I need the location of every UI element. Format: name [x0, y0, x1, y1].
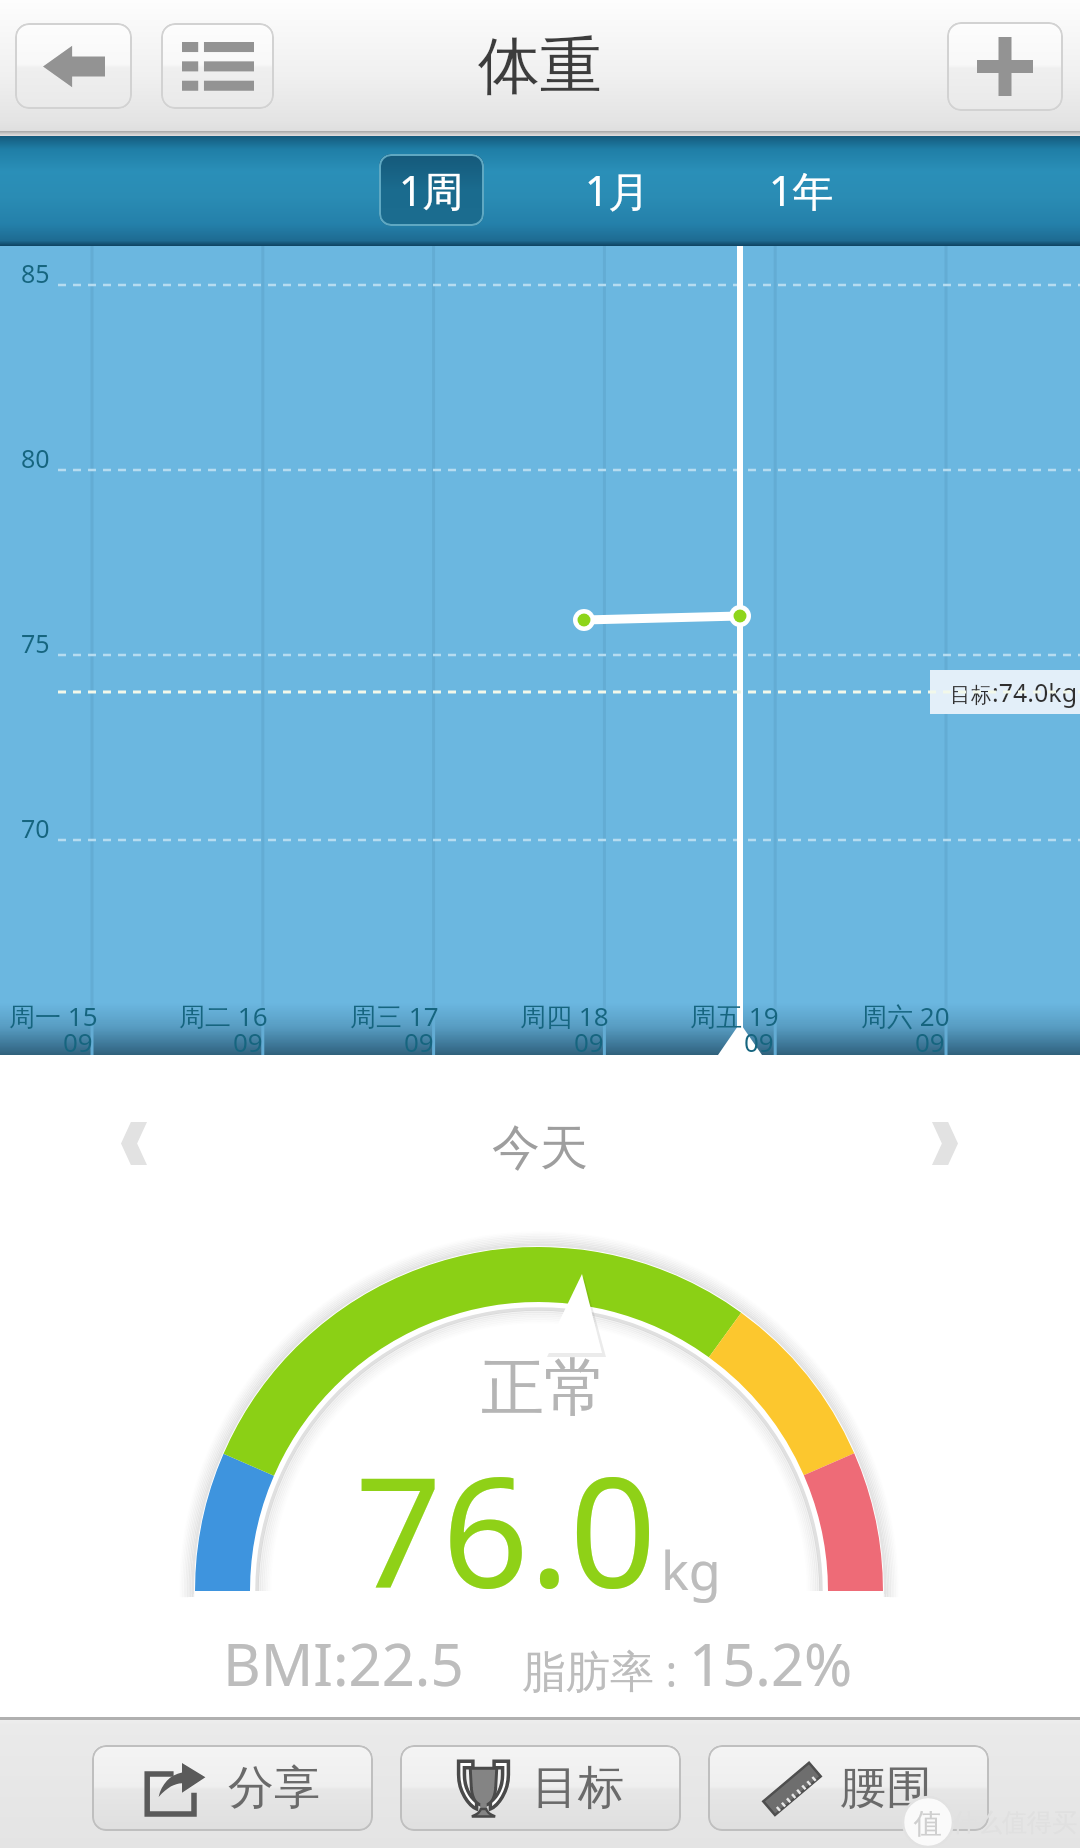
button[interactable]: 分享	[92, 1745, 373, 1831]
staticText: 分享	[228, 1759, 320, 1817]
staticText: 75	[21, 626, 50, 660]
staticText: :74.0kg	[992, 675, 1078, 709]
button[interactable]: 腰围	[708, 1745, 989, 1831]
staticText: 76.0	[355, 1425, 657, 1632]
staticText: :	[654, 1640, 689, 1700]
button[interactable]: 1周	[379, 154, 484, 226]
staticText: 1年	[769, 162, 834, 218]
staticText: 目标	[532, 1759, 624, 1817]
staticText: 值	[914, 1806, 942, 1841]
staticText: 1月	[585, 162, 650, 218]
staticText: 09	[744, 1024, 774, 1059]
staticText: 周六 20	[861, 998, 950, 1034]
staticText: 09	[233, 1024, 263, 1059]
staticText: 正常	[481, 1348, 607, 1427]
staticText: 70	[21, 811, 50, 845]
staticText: 周三 17	[350, 998, 439, 1034]
button[interactable]: List	[161, 23, 274, 109]
staticText: 09	[404, 1024, 434, 1059]
staticText: 目标	[950, 682, 992, 708]
button[interactable]: Next day	[915, 1102, 975, 1185]
staticText: 15.2%	[689, 1624, 853, 1703]
staticText: 体重	[478, 27, 602, 105]
staticText: 周二 16	[179, 998, 268, 1034]
button[interactable]: 1月	[565, 154, 670, 226]
staticText: 周一 15	[9, 998, 98, 1034]
staticText: BMI:22.5	[223, 1624, 464, 1703]
button[interactable]: Previous day	[104, 1102, 164, 1185]
staticText: 80	[21, 441, 50, 475]
staticText: 周四 18	[520, 998, 609, 1034]
staticText: 85	[21, 256, 50, 290]
staticText: 周五 19	[690, 998, 779, 1034]
staticText: 09	[63, 1024, 93, 1059]
staticText: 1周	[399, 162, 464, 218]
button[interactable]: 1年	[749, 154, 854, 226]
button[interactable]: 目标	[400, 1745, 681, 1831]
staticText: 09	[915, 1024, 945, 1059]
staticText: 什么值得买	[952, 1807, 1077, 1838]
staticText: 腰围	[840, 1759, 932, 1817]
staticText: 脂肪率	[522, 1645, 654, 1700]
staticText: 今天	[492, 1118, 588, 1178]
staticText: 09	[574, 1024, 604, 1059]
button[interactable]: Back	[15, 23, 132, 109]
staticText: kg	[661, 1534, 721, 1605]
button[interactable]: Add	[947, 22, 1063, 111]
